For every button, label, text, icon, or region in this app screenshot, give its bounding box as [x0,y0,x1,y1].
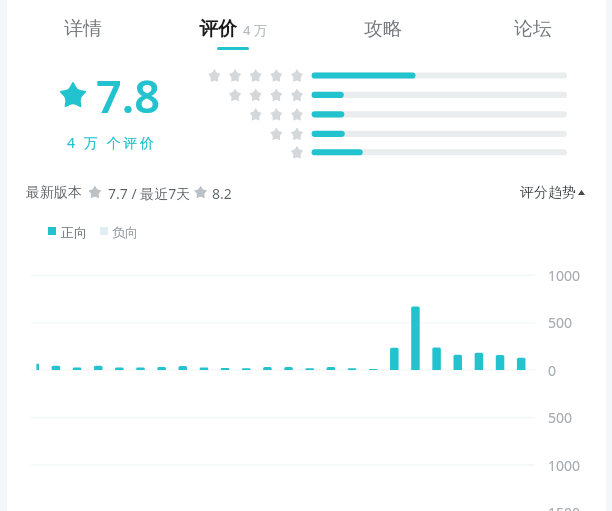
staticText: 正向 [61,224,87,240]
staticText: 4 万 个评价 [67,133,157,152]
staticText: 1000 [548,266,581,285]
staticText: 500 [548,313,573,332]
staticText: 评价 [199,17,237,41]
staticText: 详情 [64,17,102,41]
staticText: 7.7 / 最近7天 [108,184,191,203]
button[interactable]: 论坛 [478,0,588,56]
button[interactable]: 攻略 [328,0,438,56]
staticText: 500 [548,408,573,427]
button[interactable]: 详情 [28,0,138,56]
staticText: 0 [548,361,557,380]
button[interactable]: 评分趋势 [520,184,585,201]
staticText: 1500 [548,503,581,511]
staticText: 负向 [112,224,138,240]
staticText: 1000 [548,456,581,475]
staticText: 8.2 [212,184,232,203]
staticText: 7.8 [96,65,160,126]
staticText: 评分趋势 [520,184,576,201]
staticText: 论坛 [514,17,552,41]
staticText: 攻略 [364,17,402,41]
staticText: 4 万 [243,21,267,39]
staticText: 最新版本 [26,184,82,202]
button[interactable]: 评价 [178,0,288,56]
